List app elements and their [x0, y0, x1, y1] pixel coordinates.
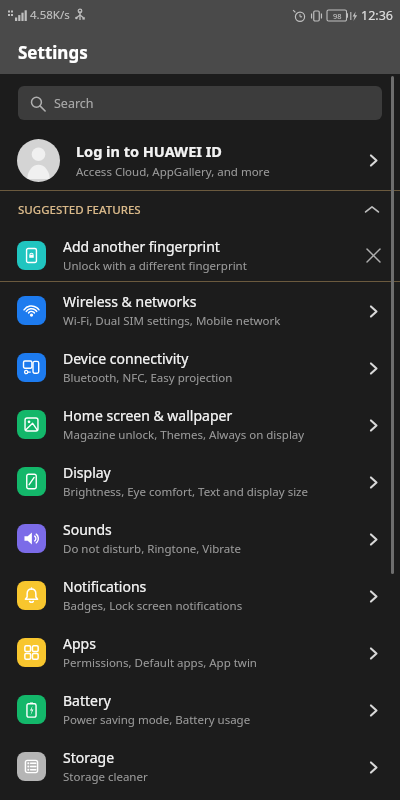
staticText: Home screen & wallpaper [63, 406, 233, 425]
button[interactable]: Device connectivity [0, 339, 400, 396]
button[interactable]: Dismiss [360, 242, 386, 268]
staticText: Brightness, Eye comfort, Text and displa… [63, 484, 309, 500]
staticText: Power saving mode, Battery usage [63, 712, 251, 728]
other: Open [360, 526, 386, 552]
staticText: Badges, Lock screen notifications [63, 598, 243, 614]
other: Open [360, 583, 386, 609]
other: Open [360, 147, 386, 173]
staticText: Log in to HUAWEI ID [76, 141, 222, 161]
staticText: Permissions, Default apps, App twin [63, 655, 257, 671]
staticText: Wi-Fi, Dual SIM settings, Mobile network [63, 313, 281, 329]
button[interactable]: SUGGESTED FEATURES [0, 191, 400, 229]
button[interactable]: Home screen & wallpaper [0, 396, 400, 453]
button[interactable]: Display [0, 453, 400, 510]
staticText: Display [63, 463, 111, 482]
other: Open [360, 298, 386, 324]
button[interactable]: Notifications [0, 567, 400, 624]
other: Open [360, 754, 386, 780]
other: Open [360, 412, 386, 438]
button[interactable]: Storage [0, 738, 400, 795]
staticText: Storage [63, 748, 115, 767]
staticText: 4.58K/s [30, 7, 70, 23]
button[interactable]: Log in to HUAWEI ID [0, 130, 400, 190]
staticText: Notifications [63, 577, 147, 596]
button[interactable]: Wireless & networks [0, 282, 400, 339]
staticText: Settings [18, 41, 88, 64]
staticText: Sounds [63, 520, 112, 539]
staticText: Battery [63, 691, 111, 710]
staticText: Search [54, 95, 94, 112]
button[interactable]: Search [18, 86, 382, 120]
button[interactable]: Add another fingerprint [0, 229, 400, 281]
button[interactable]: Apps [0, 624, 400, 681]
staticText: SUGGESTED FEATURES [18, 202, 141, 218]
other: Collapse [360, 198, 384, 222]
staticText: Add another fingerprint [63, 237, 220, 256]
staticText: Access Cloud, AppGallery, and more [76, 164, 270, 180]
staticText: 12:36 [361, 7, 393, 24]
staticText: Device connectivity [63, 349, 189, 368]
other: Open [360, 469, 386, 495]
other: Open [360, 355, 386, 381]
staticText: Storage cleaner [63, 769, 148, 785]
other: Open [360, 640, 386, 666]
staticText: Apps [63, 634, 96, 653]
other: Open [360, 697, 386, 723]
staticText: Do not disturb, Ringtone, Vibrate [63, 541, 241, 557]
button[interactable]: Sounds [0, 510, 400, 567]
staticText: 98 [333, 11, 342, 21]
button[interactable]: Battery [0, 681, 400, 738]
staticText: Magazine unlock, Themes, Always on displ… [63, 427, 305, 443]
staticText: Unlock with a different fingerprint [63, 258, 247, 274]
staticText: Bluetooth, NFC, Easy projection [63, 370, 233, 386]
staticText: Wireless & networks [63, 292, 197, 311]
